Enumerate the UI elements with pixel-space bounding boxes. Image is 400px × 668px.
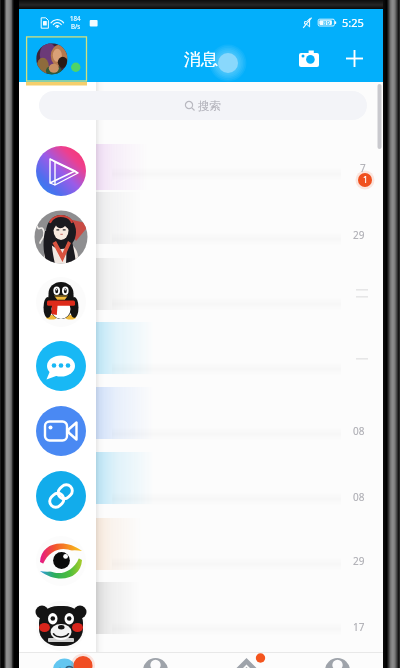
- button[interactable]: Profile: [25, 35, 87, 81]
- staticText: 08: [353, 424, 365, 438]
- button[interactable]: Contact 8: [36, 601, 86, 651]
- staticText: B/s: [71, 22, 81, 30]
- button[interactable]: Contact 3: [36, 276, 86, 326]
- staticText: 1: [363, 174, 368, 186]
- button[interactable]: Add: [339, 44, 371, 76]
- button[interactable]: Tab 2: [110, 652, 201, 668]
- staticText: 7: [360, 161, 366, 175]
- staticText: 17: [353, 620, 365, 634]
- staticText: 搜索: [198, 99, 221, 113]
- staticText: 184: [70, 14, 81, 22]
- staticText: 29: [353, 554, 365, 568]
- button[interactable]: Tab 1: [19, 652, 110, 668]
- button[interactable]: Contact 5: [36, 406, 86, 456]
- button[interactable]: Contact 1: [36, 146, 86, 196]
- button[interactable]: 搜索: [39, 91, 367, 120]
- button[interactable]: Tab 4: [292, 652, 383, 668]
- button[interactable]: Contact 7: [36, 536, 86, 586]
- staticText: 5:25: [342, 15, 364, 30]
- staticText: 消息: [184, 49, 218, 70]
- button[interactable]: Camera: [293, 44, 325, 76]
- button[interactable]: Tab 3: [201, 652, 292, 668]
- button[interactable]: Contact 2: [36, 211, 86, 261]
- button[interactable]: Contact 6: [36, 471, 86, 521]
- staticText: 08: [353, 490, 365, 504]
- button[interactable]: Contact 4: [36, 341, 86, 391]
- staticText: 89: [323, 19, 330, 27]
- staticText: 29: [353, 228, 365, 242]
